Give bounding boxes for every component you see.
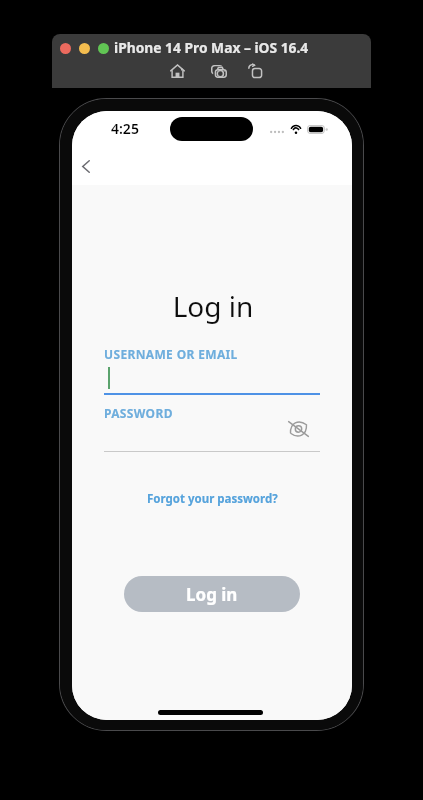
button[interactable]: Password: [104, 419, 294, 452]
staticText: iPhone 14 Pro Max – iOS 16.4: [114, 38, 309, 57]
button[interactable]: Home: [166, 60, 188, 82]
button[interactable]: Forgot your password?: [137, 487, 288, 511]
staticText: 4:25: [111, 119, 139, 138]
staticText: PASSWORD: [104, 405, 173, 421]
button[interactable]: Rotate: [244, 60, 266, 82]
staticText: Forgot your password?: [147, 491, 278, 507]
button[interactable]: Show password: [281, 412, 315, 446]
button[interactable]: Username or email: [104, 361, 320, 394]
button[interactable]: Maximize: [98, 43, 109, 54]
staticText: Log in: [73, 287, 352, 325]
button[interactable]: Back: [73, 153, 99, 179]
staticText: USERNAME OR EMAIL: [104, 346, 238, 362]
button[interactable]: Minimize: [79, 43, 90, 54]
staticText: Log in: [186, 583, 238, 606]
button[interactable]: Close: [60, 43, 71, 54]
button[interactable]: Log in: [124, 576, 300, 612]
button[interactable]: Screenshot: [208, 60, 230, 82]
